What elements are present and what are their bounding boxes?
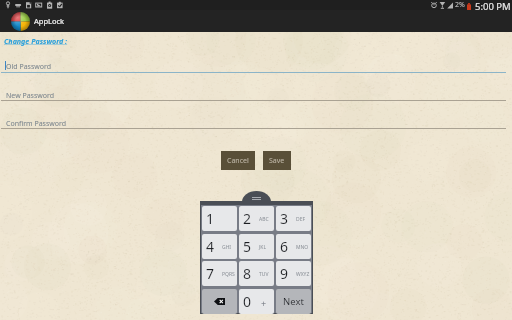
button[interactable]: Old Password — [0, 58, 512, 78]
staticText: Cancel — [227, 156, 249, 166]
button[interactable]: 3 — [276, 206, 311, 231]
button[interactable]: 7 — [202, 261, 237, 286]
staticText: 0 — [243, 292, 252, 311]
button[interactable]: Save — [263, 151, 291, 170]
button[interactable]: 6 — [276, 234, 311, 259]
staticText: Save — [269, 156, 285, 166]
staticText: DEF — [296, 216, 306, 223]
button[interactable]: New Password — [0, 87, 512, 107]
button[interactable]: Confirm Password — [0, 115, 512, 135]
button[interactable]: Change Password : — [4, 36, 68, 46]
button[interactable]: Cancel — [221, 151, 255, 170]
staticText: 5:00 PM — [475, 0, 511, 10]
staticText: Confirm Password — [6, 119, 67, 129]
staticText: 4 — [206, 237, 215, 256]
staticText: Old Password — [6, 62, 52, 72]
staticText: 3 — [280, 209, 289, 228]
button[interactable]: 1 — [202, 206, 237, 231]
button[interactable]: 8 — [239, 261, 274, 286]
button[interactable]: 2 — [239, 206, 274, 231]
staticText: 9 — [280, 264, 289, 283]
staticText: TUV — [259, 271, 269, 278]
button[interactable]: 0 — [239, 289, 274, 314]
button[interactable]: 4 — [202, 234, 237, 259]
button[interactable]: 9 — [276, 261, 311, 286]
staticText: PQRS — [222, 271, 235, 278]
staticText: + — [261, 297, 267, 309]
staticText: ABC — [259, 216, 269, 223]
staticText: WXYZ — [296, 271, 310, 278]
staticText: 8 — [243, 264, 252, 283]
button[interactable]: Delete — [202, 289, 237, 314]
staticText: 2% — [455, 0, 465, 10]
staticText: 6 — [280, 237, 289, 256]
staticText: Next — [283, 295, 304, 308]
button[interactable]: 5 — [239, 234, 274, 259]
button[interactable]: Resize keyboard — [242, 191, 271, 202]
staticText: MNO — [296, 244, 309, 251]
staticText: GHI — [222, 244, 232, 251]
button[interactable]: Next — [276, 289, 311, 314]
staticText: 1 — [206, 209, 215, 228]
staticText: 2 — [243, 209, 252, 228]
staticText: AppLock — [34, 16, 65, 26]
staticText: 5 — [243, 237, 252, 256]
staticText: New Password — [6, 91, 55, 101]
staticText: JKL — [259, 244, 267, 251]
staticText: 7 — [206, 264, 215, 283]
